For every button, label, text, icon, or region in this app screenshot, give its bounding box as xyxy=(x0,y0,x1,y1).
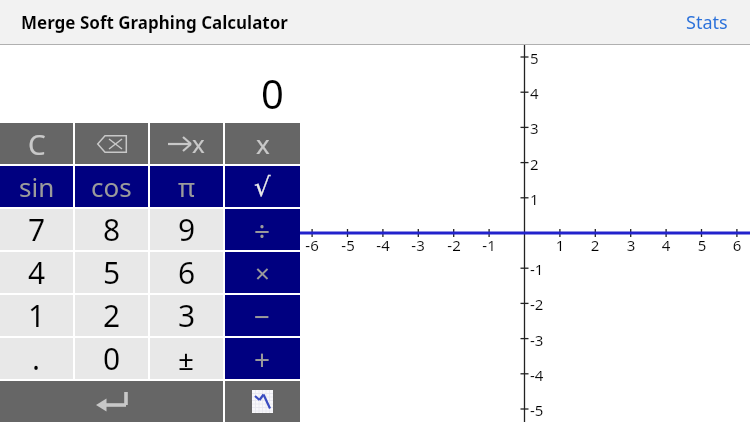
button[interactable]: x xyxy=(225,123,300,164)
button[interactable]: 5 xyxy=(75,252,148,293)
button[interactable]: ± xyxy=(150,338,223,379)
button[interactable]: C xyxy=(0,123,73,164)
staticText: 4 xyxy=(28,252,46,293)
button[interactable]: √ xyxy=(225,166,300,207)
staticText: -3 xyxy=(403,235,433,255)
staticText: -6 xyxy=(297,235,327,255)
button[interactable]: Stats xyxy=(686,0,750,45)
staticText: 3 xyxy=(616,235,646,255)
staticText: ± xyxy=(178,340,195,378)
button[interactable]: − xyxy=(225,295,300,336)
staticText: 8 xyxy=(103,209,121,250)
staticText: 6 xyxy=(722,235,750,255)
button[interactable]: 2 xyxy=(75,295,148,336)
button[interactable] xyxy=(225,381,300,422)
button[interactable]: 7 xyxy=(0,209,73,250)
staticText: -5 xyxy=(333,235,363,255)
button[interactable] xyxy=(75,123,148,164)
button[interactable]: π xyxy=(150,166,223,207)
button[interactable]: 8 xyxy=(75,209,148,250)
staticText: . xyxy=(32,338,41,379)
staticText: x xyxy=(256,126,270,161)
staticText: × xyxy=(255,255,270,290)
staticText: -3 xyxy=(530,330,544,350)
button[interactable]: 4 xyxy=(0,252,73,293)
staticText: 4 xyxy=(530,83,539,103)
staticText: Merge Soft Graphing Calculator xyxy=(21,11,288,34)
staticText: -1 xyxy=(474,235,504,255)
button[interactable]: 3 xyxy=(150,295,223,336)
staticText: 2 xyxy=(580,235,610,255)
staticText: 3 xyxy=(530,118,539,138)
button[interactable]: x xyxy=(150,123,223,164)
staticText: -2 xyxy=(439,235,469,255)
button[interactable]: cos xyxy=(75,166,148,207)
staticText: sin xyxy=(19,169,55,204)
staticText: 0 xyxy=(261,66,284,120)
staticText: − xyxy=(254,297,271,335)
button[interactable]: 0 xyxy=(75,338,148,379)
staticText: √ xyxy=(254,172,271,202)
staticText: 7 xyxy=(28,209,46,250)
button[interactable] xyxy=(0,381,223,422)
button[interactable]: 9 xyxy=(150,209,223,250)
staticText: 2 xyxy=(103,295,121,336)
staticText: ÷ xyxy=(254,211,271,249)
staticText: 1 xyxy=(28,295,46,336)
staticText: 0 xyxy=(103,338,121,379)
staticText: Stats xyxy=(686,10,728,35)
staticText: 1 xyxy=(530,189,539,209)
staticText: -4 xyxy=(530,365,544,385)
staticText: -2 xyxy=(530,294,544,314)
staticText: + xyxy=(254,340,271,378)
staticText: 5 xyxy=(103,252,121,293)
staticText: 1 xyxy=(545,235,575,255)
staticText: 5 xyxy=(687,235,717,255)
staticText: -1 xyxy=(530,259,544,279)
staticText: 5 xyxy=(530,48,539,68)
staticText: 4 xyxy=(651,235,681,255)
staticText: cos xyxy=(91,169,132,204)
button[interactable]: sin xyxy=(0,166,73,207)
button[interactable]: × xyxy=(225,252,300,293)
staticText: -5 xyxy=(530,400,544,420)
staticText: 6 xyxy=(178,252,196,293)
button[interactable]: 6 xyxy=(150,252,223,293)
button[interactable]: . xyxy=(0,338,73,379)
button[interactable]: ÷ xyxy=(225,209,300,250)
button[interactable]: + xyxy=(225,338,300,379)
staticText: 9 xyxy=(178,209,196,250)
staticText: 3 xyxy=(178,295,196,336)
staticText: 2 xyxy=(530,154,539,174)
staticText: π xyxy=(178,169,195,204)
staticText: x xyxy=(192,127,205,160)
staticText: -4 xyxy=(368,235,398,255)
button[interactable]: 1 xyxy=(0,295,73,336)
staticText: C xyxy=(28,125,46,163)
